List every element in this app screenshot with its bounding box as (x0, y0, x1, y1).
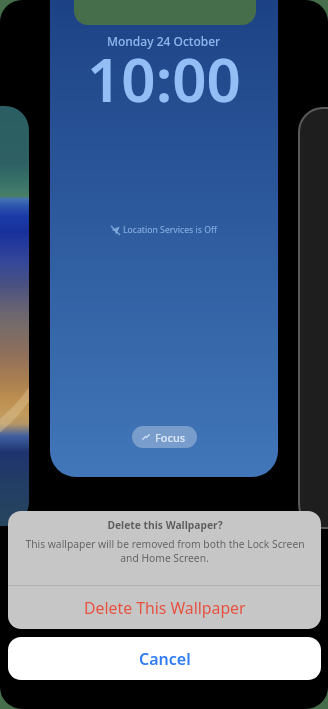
staticText: Delete This Wallpaper (84, 597, 246, 619)
button[interactable]: Focus (132, 426, 197, 448)
staticText: Delete this Wallpaper? (107, 518, 223, 532)
staticText: Cancel (139, 648, 191, 670)
button[interactable]: Cancel (8, 637, 321, 680)
button[interactable]: Delete This Wallpaper (8, 586, 321, 629)
staticText: 10:00 (87, 38, 241, 120)
staticText: Focus (155, 430, 186, 445)
staticText: Monday 24 October (107, 33, 221, 49)
staticText: and Home Screen. (120, 551, 209, 565)
button[interactable] (0, 106, 29, 526)
staticText: Location Services is Off (123, 224, 217, 236)
button[interactable] (299, 108, 328, 528)
staticText: This wallpaper will be removed from both… (25, 537, 305, 551)
button[interactable]: Monday 24 October (50, 0, 278, 477)
